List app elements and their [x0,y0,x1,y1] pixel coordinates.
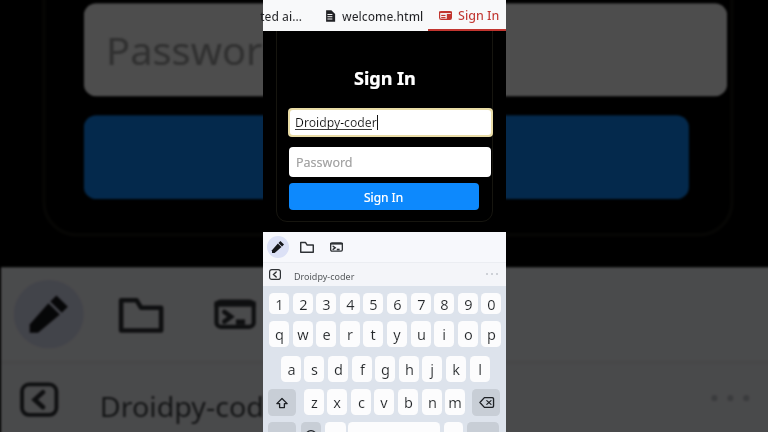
staticText: 5 [369,294,378,314]
staticText: Password [296,154,353,171]
staticText: 2 [299,294,308,314]
button[interactable]: Editor [267,236,289,258]
staticText: Password [106,25,288,78]
button[interactable]: 7 [411,293,431,314]
button[interactable]: ted ai… [260,0,302,31]
button[interactable]: 8 [434,293,454,314]
staticText: ted ai… [260,8,302,24]
button[interactable]: t [363,321,383,347]
button[interactable]: Enter [467,422,499,432]
button[interactable]: welcome.html [325,0,424,31]
staticText: 6 [393,294,402,314]
button[interactable]: u [411,321,431,347]
staticText: Sign In [354,66,416,91]
button[interactable]: 0 [481,293,501,314]
button[interactable]: p [481,321,501,347]
button[interactable]: Terminal [325,236,347,258]
button[interactable]: q [269,321,289,347]
button[interactable]: a [281,356,301,382]
button[interactable]: b [398,389,418,415]
staticText: Sign In [364,189,404,205]
staticText: 3 [322,294,331,314]
button[interactable]: x [327,389,347,415]
staticText: x [333,392,341,412]
button[interactable]: g [375,356,395,382]
staticText: 9 [464,294,473,314]
staticText: welcome.html [342,8,424,24]
staticText: s [311,359,318,379]
button[interactable]: Password [289,147,491,177]
staticText: a [287,359,296,379]
button[interactable]: r [340,321,360,347]
button[interactable]: h [399,356,419,382]
button[interactable]: y [387,321,407,347]
button[interactable]: Terminal [198,280,269,348]
staticText: q [275,324,284,344]
staticText: j [430,359,434,379]
button[interactable]: 4 [340,293,360,314]
button[interactable]: . [444,422,463,432]
button[interactable]: Password [84,3,727,96]
button[interactable]: Emoji [301,422,321,432]
staticText: Sign In [458,7,500,24]
staticText: 4 [346,294,355,314]
staticText: f [360,359,365,379]
button[interactable]: Files [296,236,318,258]
button[interactable]: d [328,356,348,382]
button[interactable]: 3 [316,293,336,314]
button[interactable]: 9 [458,293,478,314]
button[interactable]: Shift [268,389,296,416]
button[interactable]: Files [106,280,176,348]
button[interactable]: e [316,321,336,347]
button[interactable]: Sign In [289,183,479,210]
staticText: b [404,392,413,412]
button[interactable]: i [434,321,454,347]
button[interactable]: More options [486,273,498,275]
button[interactable]: Sign In [84,115,689,199]
button[interactable]: o [458,321,478,347]
button[interactable]: m [445,389,465,415]
staticText: i [442,324,446,344]
button[interactable]: 2 [293,293,313,314]
staticText: m [448,392,462,412]
button[interactable]: z [304,389,324,415]
staticText: e [322,324,331,344]
button[interactable]: l [470,356,490,382]
button[interactable]: w [293,321,313,347]
button[interactable]: Editor [14,280,84,348]
button[interactable]: 5 [363,293,383,314]
staticText: 7 [417,294,426,314]
button[interactable]: Back [269,268,281,280]
button[interactable]: Droidpy-coder [290,110,491,135]
staticText: z [311,392,318,412]
staticText: n [428,392,437,412]
staticText: 0 [487,294,496,314]
staticText: h [405,359,414,379]
button[interactable]: n [422,389,442,415]
button[interactable]: 6 [387,293,407,314]
button[interactable]: f [352,356,372,382]
button[interactable]: s [304,356,324,382]
staticText: d [334,359,343,379]
staticText: Droidpy-coder [295,114,377,131]
button[interactable]: v [374,389,394,415]
button[interactable]: Backspace [472,389,500,416]
button[interactable]: More options [711,395,749,401]
button[interactable]: j [422,356,442,382]
staticText: r [347,324,353,344]
staticText: g [381,359,390,379]
staticText: w [297,324,309,344]
button[interactable]: c [351,389,371,415]
button[interactable]: , [325,422,346,432]
button[interactable]: k [446,356,466,382]
button[interactable]: 1 [269,293,289,314]
staticText: c [358,392,365,412]
button[interactable]: Sign In [428,0,506,31]
button[interactable]: Back [20,379,58,417]
button[interactable]: ?123 [268,422,296,432]
staticText: t [370,324,376,344]
